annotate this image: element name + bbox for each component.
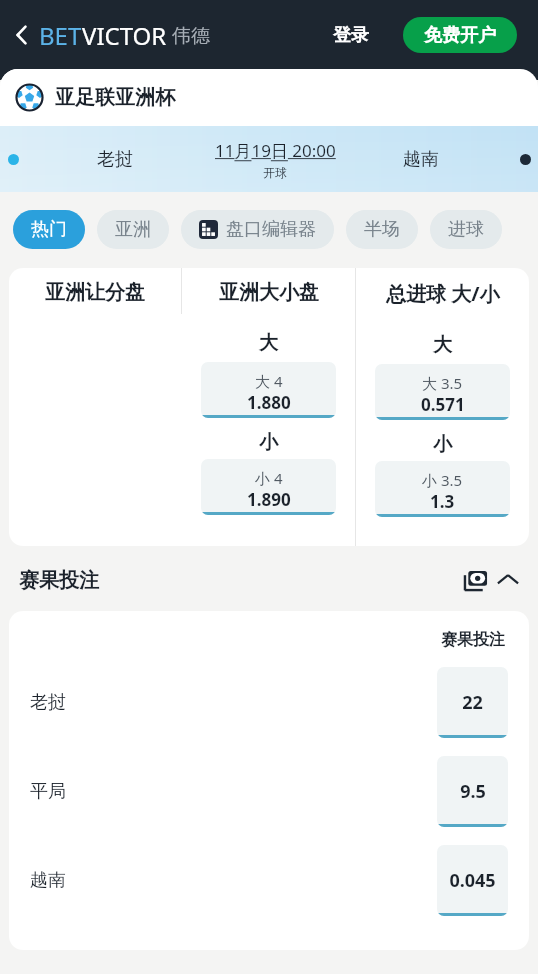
button[interactable]: 热门	[13, 210, 85, 249]
button[interactable]: 半场	[346, 210, 418, 249]
staticText: 老挝	[30, 691, 66, 714]
staticText: 盘口编辑器	[226, 218, 316, 241]
staticText: 赛果投注	[441, 630, 505, 650]
staticText: BET	[39, 19, 82, 52]
staticText: 赛果投注	[19, 568, 99, 593]
button[interactable]: 亚洲	[97, 210, 169, 249]
button[interactable]: 盘口编辑器	[181, 210, 334, 249]
staticText: 小 3.5	[422, 470, 463, 490]
button[interactable]: Cash out	[460, 564, 492, 596]
staticText: 小	[433, 433, 452, 457]
button[interactable]: 小 4	[201, 459, 336, 515]
staticText: 大 4	[255, 371, 283, 391]
button[interactable]: 登录	[327, 16, 375, 55]
staticText: 0.045	[449, 868, 496, 893]
button[interactable]: 大 3.5	[375, 364, 510, 420]
staticText: 老挝	[97, 148, 133, 171]
button[interactable]: Back	[5, 18, 39, 52]
staticText: 1.890	[247, 488, 291, 511]
staticText: 进球	[448, 218, 484, 241]
staticText: 9.5	[460, 779, 486, 804]
staticText: 越南	[30, 869, 66, 892]
staticText: 22	[462, 690, 483, 715]
staticText: 开球	[263, 165, 287, 180]
staticText: 1.3	[430, 490, 455, 513]
button[interactable]: 进球	[430, 210, 502, 249]
button[interactable]: 小 3.5	[375, 461, 510, 517]
staticText: 免费开户	[424, 24, 496, 47]
staticText: 伟德	[172, 24, 210, 48]
staticText: 小	[259, 431, 278, 455]
staticText: 亚足联亚洲杯	[55, 85, 175, 110]
button[interactable]: 赛果投注	[0, 551, 538, 609]
staticText: 越南	[403, 148, 439, 171]
button[interactable]: 免费开户	[403, 17, 517, 53]
staticText: 大	[433, 333, 452, 357]
button[interactable]: 亚足联亚洲杯	[0, 69, 538, 126]
staticText: 亚洲	[115, 218, 151, 241]
staticText: 0.571	[421, 393, 465, 416]
button[interactable]: 22	[437, 667, 508, 738]
staticText: 大 3.5	[422, 373, 463, 393]
staticText: 亚洲让分盘	[45, 280, 145, 305]
staticText: 小 4	[255, 468, 283, 488]
staticText: 半场	[364, 218, 400, 241]
staticText: 大	[259, 331, 278, 355]
staticText: 平局	[30, 780, 66, 803]
staticText: 亚洲大小盘	[219, 280, 319, 305]
button[interactable]: 0.045	[437, 845, 508, 916]
staticText: 热门	[31, 218, 67, 241]
button[interactable]: 9.5	[437, 756, 508, 827]
staticText: 11月19日 20:00	[215, 139, 336, 162]
button[interactable]: Collapse	[492, 564, 524, 596]
staticText: 1.880	[247, 391, 291, 414]
staticText: 登录	[333, 24, 369, 47]
staticText: VICTOR	[82, 19, 167, 52]
button[interactable]: 大 4	[201, 362, 336, 418]
button[interactable]: 老挝	[0, 126, 538, 192]
staticText: 总进球 大/小	[386, 280, 500, 307]
